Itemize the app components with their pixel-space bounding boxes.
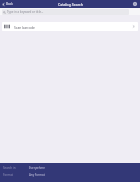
button[interactable]: Scan barcode [2,22,138,31]
button[interactable]: Search in [0,166,140,170]
staticText: Back [6,2,13,6]
button[interactable]: Account [130,0,140,8]
staticText: Format [3,173,29,177]
button[interactable]: Type in a keyword or title... [2,9,129,15]
staticText: Search in [3,166,29,170]
staticText: Any Format [29,173,45,177]
staticText: Type in a keyword or title... [7,10,44,14]
staticText: Scan barcode [14,25,35,29]
staticText: Catalog Search [58,2,83,7]
staticText: Everywhere [29,166,45,170]
button[interactable]: Back [0,0,15,8]
button[interactable]: Format [0,173,140,177]
